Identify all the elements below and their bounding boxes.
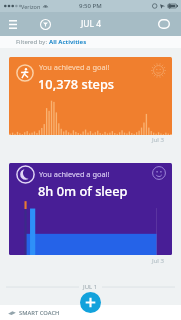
staticText: All Activities [49, 38, 87, 46]
staticText: Jul 3 [152, 257, 164, 265]
button[interactable]: You achieved a goal! [9, 57, 172, 135]
staticText: You achieved a goal! [39, 62, 110, 72]
staticText: You achieved a goal! [39, 169, 110, 179]
staticText: Jul 3 [152, 136, 164, 144]
staticText: Verizon [21, 3, 41, 10]
staticText: 9:50 PM [79, 2, 102, 10]
staticText: 10,378 steps [38, 75, 115, 92]
staticText: 8h 0m of sleep [38, 182, 128, 199]
button[interactable]: Menu [4, 12, 21, 36]
staticText: SMART COACH [19, 309, 60, 317]
staticText: JUL 4 [81, 18, 102, 30]
button[interactable]: Add activity [80, 292, 101, 313]
button[interactable]: Filter activities [34, 12, 57, 36]
button[interactable]: SMART COACH [8, 305, 60, 320]
staticText: JUL 1 [83, 283, 98, 291]
button[interactable]: Profile [155, 12, 173, 36]
staticText: Filtered by: [16, 38, 49, 46]
button[interactable]: You achieved a goal! [9, 163, 172, 255]
